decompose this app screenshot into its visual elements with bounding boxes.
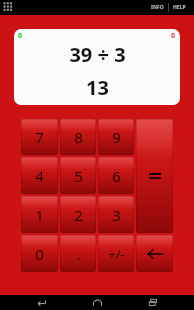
button[interactable]: 8 xyxy=(60,119,96,155)
staticText: . xyxy=(76,244,81,264)
button[interactable]: Back xyxy=(26,295,56,310)
button[interactable]: 0 xyxy=(21,235,58,272)
button[interactable]: 2 xyxy=(60,196,96,233)
button[interactable]: Equals xyxy=(136,119,173,233)
button[interactable]: Recent apps xyxy=(138,295,168,310)
button[interactable]: INFO xyxy=(147,4,168,11)
staticText: 5 xyxy=(74,166,83,186)
staticText: 2 xyxy=(74,205,83,225)
button[interactable]: 9 xyxy=(98,119,134,155)
staticText: 1 xyxy=(35,205,44,225)
staticText: 4 xyxy=(35,166,44,186)
staticText: 6 xyxy=(112,166,121,186)
button[interactable]: . xyxy=(60,235,96,272)
staticText: 0 xyxy=(18,31,23,41)
button[interactable]: 1 xyxy=(21,196,58,233)
staticText: 9 xyxy=(112,127,121,147)
staticText: 13 xyxy=(86,74,109,101)
button[interactable]: 4 xyxy=(21,157,58,194)
button[interactable]: 7 xyxy=(21,119,58,155)
button[interactable]: 3 xyxy=(98,196,134,233)
button[interactable]: +/- xyxy=(98,235,134,272)
staticText: 0 xyxy=(171,31,176,41)
staticText: 0 xyxy=(35,244,44,264)
button[interactable]: Backspace xyxy=(136,235,173,272)
button[interactable]: 5 xyxy=(60,157,96,194)
button[interactable]: Home xyxy=(82,295,112,310)
staticText: 39 ÷ 3 xyxy=(69,41,126,68)
button[interactable]: 0 xyxy=(14,29,180,105)
staticText: 7 xyxy=(35,127,44,147)
staticText: 3 xyxy=(112,205,121,225)
staticText: 8 xyxy=(74,127,83,147)
button[interactable]: 6 xyxy=(98,157,134,194)
staticText: +/- xyxy=(108,245,125,263)
button[interactable]: HELP xyxy=(169,4,190,11)
